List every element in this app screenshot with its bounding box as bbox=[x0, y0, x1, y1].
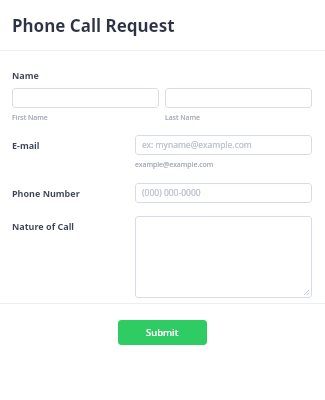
staticText: First Name bbox=[12, 113, 48, 123]
button[interactable]: E-mail bbox=[135, 135, 312, 155]
staticText: E-mail bbox=[12, 139, 40, 151]
staticText: Phone Number bbox=[12, 187, 80, 199]
button[interactable]: Submit bbox=[118, 320, 207, 345]
staticText: Submit bbox=[146, 326, 179, 339]
staticText: example@example.com bbox=[135, 160, 214, 170]
staticText: Phone Call Request bbox=[12, 14, 175, 37]
button[interactable]: First Name bbox=[12, 88, 159, 108]
button[interactable]: Phone Number bbox=[135, 183, 312, 203]
staticText: Last Name bbox=[165, 113, 201, 123]
staticText: Nature of Call bbox=[12, 220, 75, 232]
staticText: (000) 000-0000 bbox=[142, 187, 201, 199]
staticText: Name bbox=[12, 69, 39, 81]
staticText: ex: myname@example.com bbox=[142, 139, 252, 151]
button[interactable]: Nature of Call bbox=[135, 216, 312, 298]
button[interactable]: Last Name bbox=[165, 88, 312, 108]
